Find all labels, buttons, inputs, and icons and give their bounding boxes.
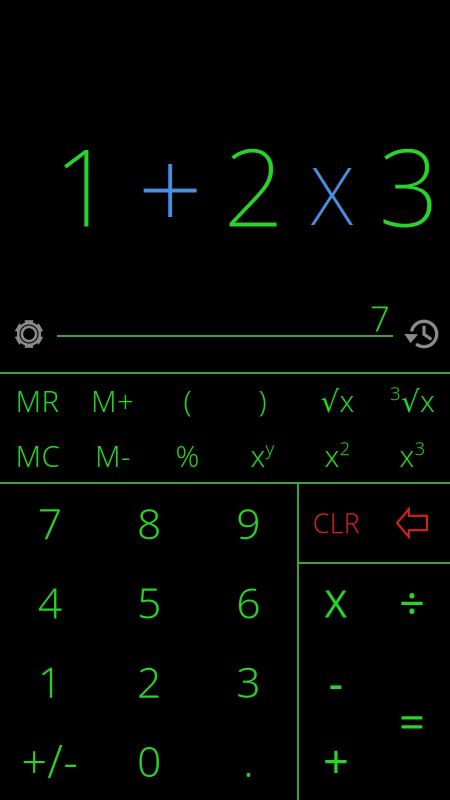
staticText: 0: [137, 732, 161, 789]
staticText: 7: [370, 295, 390, 341]
button[interactable]: .: [199, 721, 298, 800]
staticText: 1: [38, 653, 62, 709]
staticText: x: [399, 436, 414, 475]
button[interactable]: =: [374, 642, 450, 800]
staticText: 1: [53, 114, 114, 256]
staticText: M+: [91, 381, 134, 420]
staticText: MC: [15, 436, 59, 475]
button[interactable]: +/-: [0, 721, 99, 800]
staticText: MR: [15, 381, 59, 420]
staticText: 4: [38, 573, 62, 630]
staticText: 2: [137, 653, 161, 709]
button[interactable]: x: [225, 428, 300, 483]
button[interactable]: 7: [0, 483, 99, 562]
staticText: (: [183, 381, 191, 420]
staticText: %: [175, 436, 199, 475]
button[interactable]: MC: [0, 428, 75, 483]
button[interactable]: -: [298, 642, 374, 721]
staticText: CLR: [312, 505, 359, 541]
staticText: X: [324, 577, 347, 628]
staticText: +: [137, 111, 202, 263]
button[interactable]: 9: [199, 483, 298, 562]
button[interactable]: +: [298, 721, 374, 800]
button[interactable]: 8: [99, 483, 199, 562]
button[interactable]: X: [298, 563, 374, 642]
staticText: M-: [95, 436, 130, 475]
staticText: y: [265, 436, 274, 460]
staticText: +: [323, 730, 349, 791]
button[interactable]: CLR: [298, 483, 374, 563]
staticText: 2: [223, 114, 284, 256]
staticText: 2: [339, 436, 350, 460]
button[interactable]: (: [150, 373, 225, 428]
staticText: ): [258, 381, 266, 420]
staticText: x: [250, 436, 265, 475]
staticText: x: [324, 436, 339, 475]
button[interactable]: ): [225, 373, 300, 428]
staticText: √x: [401, 381, 435, 420]
staticText: 9: [236, 494, 260, 551]
button[interactable]: %: [150, 428, 225, 483]
staticText: =: [399, 691, 425, 751]
button[interactable]: 6: [199, 562, 298, 641]
button[interactable]: 5: [99, 562, 199, 641]
button[interactable]: 2: [99, 641, 199, 721]
button[interactable]: 1: [0, 641, 99, 721]
staticText: +/-: [21, 730, 78, 790]
staticText: 7: [38, 494, 62, 551]
button[interactable]: √x: [300, 373, 375, 428]
button[interactable]: 3: [199, 641, 298, 721]
button[interactable]: ÷: [374, 563, 450, 642]
button[interactable]: 3: [375, 373, 450, 428]
button[interactable]: Settings: [1, 307, 57, 361]
button[interactable]: MR: [0, 373, 75, 428]
staticText: ÷: [399, 572, 425, 633]
button[interactable]: M-: [75, 428, 150, 483]
button[interactable]: 0: [99, 721, 199, 800]
staticText: √x: [320, 381, 354, 420]
staticText: .: [243, 732, 253, 789]
staticText: -: [328, 651, 343, 712]
staticText: 3: [414, 436, 425, 460]
staticText: 3: [390, 381, 401, 405]
staticText: 3: [236, 653, 260, 709]
button[interactable]: History: [398, 307, 450, 361]
button[interactable]: x: [375, 428, 450, 483]
staticText: 3: [378, 114, 439, 256]
staticText: 6: [236, 573, 260, 630]
staticText: 8: [137, 494, 161, 551]
button[interactable]: M+: [75, 373, 150, 428]
button[interactable]: Backspace: [374, 483, 450, 563]
staticText: 5: [137, 573, 161, 630]
button[interactable]: 4: [0, 562, 99, 641]
staticText: X: [311, 141, 353, 247]
button[interactable]: x: [300, 428, 375, 483]
